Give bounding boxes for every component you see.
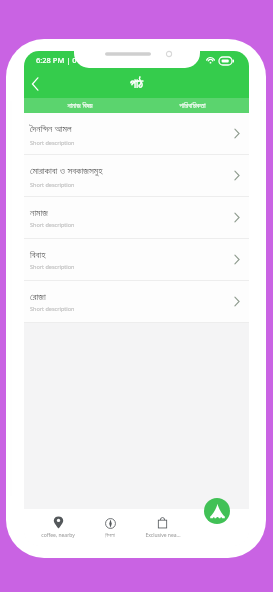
staticText: রোজা <box>30 292 46 301</box>
button[interactable]: নামাজ বিষয় <box>24 98 136 113</box>
staticText: Short description <box>30 305 75 312</box>
button[interactable]: কিবলা <box>84 509 136 546</box>
button[interactable]: Exclusive nea... <box>136 509 189 546</box>
button[interactable]: Mosque finder <box>204 498 230 524</box>
staticText: Short description <box>30 181 75 188</box>
staticText: Short description <box>30 263 75 270</box>
staticText: নামাজ বিষয় <box>67 101 93 111</box>
staticText: Exclusive nea... <box>145 532 181 539</box>
button[interactable]: Back <box>24 73 46 95</box>
button[interactable]: দৈনন্দিন আমল <box>24 113 249 154</box>
staticText: 6:28 PM | 0 <box>36 55 77 65</box>
staticText: দৈনন্দিন আমল <box>30 122 72 135</box>
staticText: মোরাকাবা ও সবকাজসমুহ <box>30 164 103 177</box>
button[interactable]: রোজা <box>24 281 249 322</box>
staticText: Short description <box>30 221 75 228</box>
button[interactable]: coffee, nearby <box>32 509 84 546</box>
staticText: নামাজ <box>30 208 48 217</box>
staticText: পাঠ <box>130 79 143 90</box>
button[interactable]: নামাজ <box>24 197 249 238</box>
staticText: বিবাহ <box>30 250 46 259</box>
staticText: coffee, nearby <box>41 532 75 539</box>
button[interactable]: বিবাহ <box>24 239 249 280</box>
button[interactable]: পারিবারিকতা <box>136 98 249 113</box>
staticText: কিবলা <box>105 533 115 538</box>
button[interactable]: মোরাকাবা ও সবকাজসমুহ <box>24 155 249 196</box>
staticText: Short description <box>30 139 75 146</box>
staticText: পারিবারিকতা <box>179 102 206 109</box>
